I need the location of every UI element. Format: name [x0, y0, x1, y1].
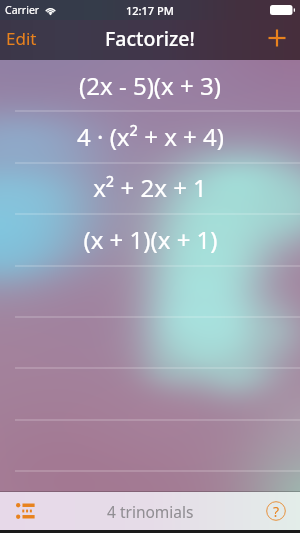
staticText: Edit [6, 27, 37, 50]
staticText: Carrier [5, 3, 40, 17]
staticText: (2x - 5)(x + 3) [79, 69, 221, 102]
staticText: Factorize! [105, 25, 195, 52]
staticText: 12:17 PM [126, 3, 174, 18]
staticText: ? [273, 502, 280, 521]
button[interactable] [0, 420, 300, 471]
staticText: 4 trinomials [107, 501, 194, 522]
button[interactable]: (2x - 5)(x + 3) [0, 61, 300, 112]
button[interactable] [0, 369, 300, 420]
button[interactable] [0, 266, 300, 317]
staticText: 4 · (x² + x + 4) [77, 120, 224, 153]
button[interactable]: Help [256, 494, 300, 528]
button[interactable] [0, 472, 300, 523]
button[interactable]: Add [258, 23, 300, 57]
button[interactable]: List [0, 495, 45, 527]
staticText: x² + 2x + 1 [93, 171, 207, 204]
staticText: (x + 1)(x + 1) [83, 223, 218, 256]
button[interactable]: (x + 1)(x + 1) [0, 215, 300, 266]
button[interactable]: x² + 2x + 1 [0, 163, 300, 214]
button[interactable] [0, 318, 300, 369]
button[interactable]: Edit [0, 21, 47, 60]
button[interactable]: 4 · (x² + x + 4) [0, 112, 300, 163]
